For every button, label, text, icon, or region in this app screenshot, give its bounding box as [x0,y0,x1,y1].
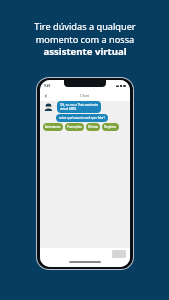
staticText: Ofertas [88,125,98,129]
staticText: Promoções [67,125,82,129]
staticText: sobre qual assunto você quer falar? [59,116,105,120]
button[interactable]: Ofertas [86,123,100,131]
staticText: Olá, eu sou a Thaís assistente virtual A… [60,103,98,111]
staticText: Chat [80,93,90,99]
staticText: 9:41 [44,84,51,88]
button[interactable]: Negócios [102,123,119,131]
button[interactable]: Back [42,92,50,100]
staticText: Tire dúvidas a qualquer momento com a no… [34,20,136,46]
staticText: Negócios [104,125,117,129]
staticText: Assinaturas [45,125,61,129]
button[interactable]: Assinaturas [43,123,63,131]
button[interactable]: Send [112,250,126,258]
staticText: assistente virtual [43,45,127,58]
button[interactable]: Promoções [65,123,84,131]
